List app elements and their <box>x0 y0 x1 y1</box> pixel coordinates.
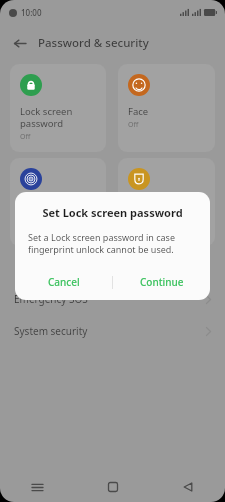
staticText: Privacy <box>128 199 160 212</box>
button[interactable]: Continue <box>113 268 210 296</box>
button[interactable]: Privacy <box>118 158 215 246</box>
button[interactable]: Lock screen password <box>10 64 106 152</box>
staticText: Emergency SOS <box>14 292 88 306</box>
staticText: Fingerprint <box>20 199 70 212</box>
staticText: Cancel <box>48 275 80 289</box>
button[interactable]: Fingerprint <box>10 158 106 246</box>
button[interactable]: Back <box>150 472 225 502</box>
staticText: Face <box>128 105 149 118</box>
staticText: Lock screen password <box>20 105 73 130</box>
button[interactable]: Home <box>75 472 150 502</box>
staticText: Off <box>20 132 31 142</box>
staticText: Set a Lock screen password in case finge… <box>28 231 197 256</box>
button[interactable]: Recent apps <box>0 472 75 502</box>
staticText: Password & security <box>38 35 149 51</box>
button[interactable]: System security <box>0 320 225 342</box>
staticText: Off <box>128 214 139 224</box>
staticText: Set Lock screen password <box>25 205 200 220</box>
button[interactable]: Emergency SOS <box>0 288 225 310</box>
staticText: System security <box>14 324 88 338</box>
button[interactable]: Cancel <box>15 268 112 296</box>
staticText: 10:00 <box>21 7 42 18</box>
staticText: Off <box>128 120 139 130</box>
button[interactable]: Back <box>8 32 30 54</box>
button[interactable]: Face <box>118 64 215 152</box>
staticText: Continue <box>140 275 184 289</box>
